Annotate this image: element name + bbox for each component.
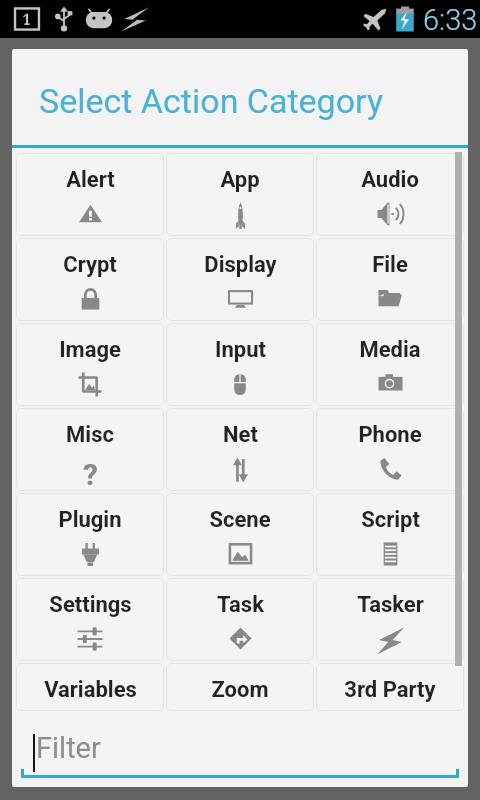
button[interactable]: Image	[16, 323, 164, 406]
button[interactable]: Input	[166, 323, 314, 406]
button[interactable]: Task	[166, 578, 314, 661]
button[interactable]: Media	[316, 323, 464, 406]
staticText: Input	[215, 337, 266, 363]
staticText: Net	[223, 422, 258, 448]
staticText: Scene	[209, 507, 271, 533]
staticText: Display	[204, 252, 277, 278]
button[interactable]: Crypt	[16, 238, 164, 321]
button[interactable]: Tasker	[316, 578, 464, 661]
staticText: App	[220, 167, 260, 193]
staticText: Plugin	[58, 507, 122, 533]
button[interactable]: App	[166, 153, 314, 236]
staticText: Audio	[361, 167, 419, 193]
button[interactable]: Net	[166, 408, 314, 491]
staticText: 6:33	[423, 3, 478, 37]
button[interactable]: Display	[166, 238, 314, 321]
staticText: Misc	[66, 422, 114, 448]
staticText: Zoom	[211, 677, 269, 703]
staticText: Tasker	[357, 592, 424, 618]
button[interactable]: Settings	[16, 578, 164, 661]
button[interactable]: Scene	[166, 493, 314, 576]
staticText: Phone	[358, 422, 422, 448]
button[interactable]: 3rd Party	[316, 663, 464, 711]
staticText: Task	[217, 592, 264, 618]
staticText: Alert	[66, 167, 115, 193]
button[interactable]: Misc	[16, 408, 164, 491]
staticText: Variables	[44, 677, 137, 703]
staticText: Settings	[49, 592, 132, 618]
button[interactable]: Phone	[316, 408, 464, 491]
button[interactable]: Zoom	[166, 663, 314, 711]
staticText: Filter	[36, 731, 101, 765]
staticText: Image	[59, 337, 121, 363]
staticText: Crypt	[63, 252, 117, 278]
staticText: Action Edit	[74, 4, 228, 42]
staticText: Select Action Category	[39, 81, 384, 121]
staticText: ?	[83, 457, 98, 491]
button[interactable]: Script	[316, 493, 464, 576]
staticText: 3rd Party	[344, 677, 436, 703]
button[interactable]: Variables	[16, 663, 164, 711]
staticText: File	[372, 252, 408, 278]
button[interactable]: Plugin	[16, 493, 164, 576]
button[interactable]: Alert	[16, 153, 164, 236]
staticText: Script	[361, 507, 420, 533]
button[interactable]: File	[316, 238, 464, 321]
staticText: Media	[359, 337, 421, 363]
button[interactable]: Audio	[316, 153, 464, 236]
